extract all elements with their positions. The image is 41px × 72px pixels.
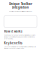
staticText: Less chrome, more room, and the same mus… [4,46,36,49]
staticText: Integration [12,6,29,9]
staticText: Seamlessly blends with the native bar [8,11,32,12]
staticText: Unique Toolbar [9,2,32,6]
staticText: Key benefits [4,41,22,45]
staticText: How it works [4,30,22,33]
staticText: Controls are rendered directly into the … [4,34,35,40]
